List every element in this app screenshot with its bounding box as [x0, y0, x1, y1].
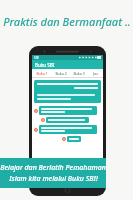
button[interactable]: Expand	[41, 117, 101, 123]
button[interactable]: Juz	[88, 69, 103, 77]
button[interactable]	[34, 80, 101, 103]
button[interactable]: Expand	[34, 106, 101, 115]
staticText: Juz	[93, 71, 98, 76]
staticText: Buku 3	[73, 71, 85, 76]
other: Expand	[62, 137, 66, 141]
other: Expand	[34, 109, 38, 113]
button[interactable]: Buku SBI	[32, 60, 103, 69]
button[interactable]: Expand	[34, 125, 101, 134]
staticText: Buku 2	[55, 71, 67, 76]
staticText: Islam kita melalui Buku SBI!	[9, 174, 98, 184]
staticText: SBI	[34, 56, 39, 60]
staticText: Buku 1	[36, 71, 48, 76]
staticText: Praktis dan Bermanfaat ..	[3, 14, 131, 29]
button[interactable]: Buku 2	[52, 69, 70, 77]
staticText: Buku SBI	[35, 62, 55, 68]
other: Expand	[41, 118, 45, 122]
other: Expand	[34, 128, 38, 132]
button[interactable]: Buku 3	[70, 69, 88, 77]
button[interactable]: Expand	[62, 136, 101, 142]
staticText: Belajar dan Berlatih Pemahaman	[0, 163, 106, 173]
button[interactable]: Buku 1	[32, 69, 52, 77]
